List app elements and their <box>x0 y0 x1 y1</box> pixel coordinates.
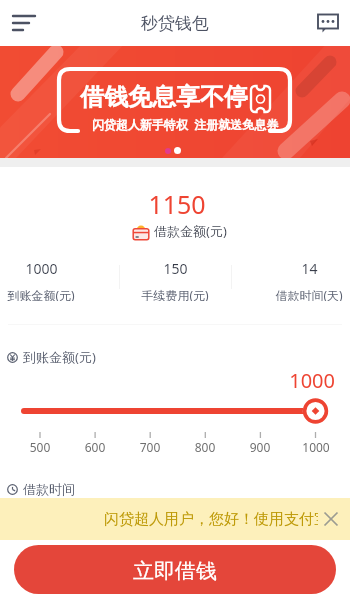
staticText: 150 <box>163 259 188 278</box>
staticText: 手续费用(元) <box>141 287 209 301</box>
staticText: 闪贷超人新手特权 注册就送免息券 <box>92 116 279 132</box>
button[interactable]: Menu <box>0 0 46 46</box>
staticText: 600 <box>73 439 117 455</box>
button[interactable]: 1000 <box>0 259 96 301</box>
staticText: 到账金额(元) <box>23 348 96 366</box>
staticText: 900 <box>238 439 282 455</box>
staticText: 借钱免息享不停 <box>80 82 248 112</box>
staticText: 14 <box>301 259 318 278</box>
staticText: 借款时间 <box>23 481 75 497</box>
staticText: 借款金额(元) <box>154 222 227 240</box>
button[interactable]: 借钱免息享不停 <box>0 46 350 158</box>
button[interactable]: 150 <box>120 259 230 301</box>
staticText: 立即借钱 <box>133 558 217 584</box>
button[interactable]: Close <box>310 499 350 539</box>
button[interactable]: Messages <box>304 0 350 46</box>
staticText: 500 <box>18 439 62 455</box>
staticText: 700 <box>128 439 172 455</box>
button[interactable]: 500 <box>0 392 350 460</box>
staticText: 800 <box>183 439 227 455</box>
button[interactable]: 14 <box>254 259 350 301</box>
button[interactable]: 立即借钱 <box>14 545 336 594</box>
staticText: 1000 <box>294 439 338 455</box>
staticText: 1150 <box>2 187 350 221</box>
staticText: 1000 <box>0 367 335 394</box>
staticText: 到账金额(元) <box>7 287 75 301</box>
staticText: 借款时间(天) <box>275 287 343 301</box>
staticText: 闪贷超人用户，您好！使用支付宝还款， <box>104 510 318 529</box>
staticText: 1000 <box>25 259 58 278</box>
staticText: 秒贷钱包 <box>141 13 209 34</box>
